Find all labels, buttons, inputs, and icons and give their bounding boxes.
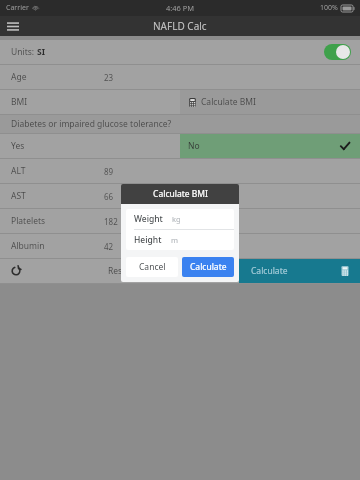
staticText: Yes xyxy=(11,140,25,152)
staticText: Albumin xyxy=(11,240,45,252)
staticText: 4:46 PM xyxy=(166,3,195,13)
button[interactable]: Calculate xyxy=(182,257,234,277)
button[interactable]: Age xyxy=(0,65,360,89)
staticText: BMI xyxy=(11,96,28,108)
button[interactable]: BMI xyxy=(0,90,180,114)
staticText: 182 xyxy=(104,216,118,227)
button[interactable]: No xyxy=(180,134,360,158)
staticText: AST xyxy=(11,190,26,202)
staticText: 42 xyxy=(104,241,114,252)
button[interactable]: Yes xyxy=(0,134,180,158)
staticText: Calculate xyxy=(190,261,227,273)
staticText: 66 xyxy=(104,191,114,202)
button[interactable]: Height xyxy=(126,230,234,250)
staticText: No xyxy=(188,140,200,152)
staticText: kg xyxy=(172,214,181,224)
button[interactable]: Cancel xyxy=(126,257,178,277)
staticText: Calculate BMI xyxy=(201,96,256,108)
button[interactable]: Albumin xyxy=(0,234,360,258)
button[interactable]: ALT xyxy=(0,159,360,183)
staticText: NAFLD Calc xyxy=(153,19,207,33)
staticText: 89 xyxy=(104,166,114,177)
staticText: m xyxy=(171,235,179,245)
staticText: Calculate xyxy=(251,265,288,277)
button[interactable]: Weight xyxy=(126,209,234,229)
staticText: 100% xyxy=(320,3,338,13)
button[interactable]: Reset xyxy=(0,259,239,283)
button[interactable]: Platelets xyxy=(0,209,360,233)
staticText: Calculate BMI xyxy=(153,188,208,200)
staticText: Platelets xyxy=(11,215,46,227)
button[interactable]: Units toggle xyxy=(324,44,351,60)
button[interactable]: AST xyxy=(0,184,360,208)
staticText: Height xyxy=(134,234,162,246)
staticText: 23 xyxy=(104,72,114,83)
staticText: Carrier xyxy=(6,3,29,13)
staticText: ALT xyxy=(11,165,26,177)
staticText: Age xyxy=(11,71,27,83)
button[interactable]: Calculate xyxy=(239,259,360,283)
staticText: Cancel xyxy=(139,261,166,273)
staticText: Units: xyxy=(11,46,37,58)
button[interactable]: Calculate BMI xyxy=(180,90,360,114)
staticText: Reset xyxy=(108,265,131,277)
staticText: Diabetes or impaired glucose tolerance? xyxy=(11,118,172,130)
staticText: Weight xyxy=(134,213,163,225)
staticText: SI xyxy=(37,46,45,58)
button[interactable]: Menu xyxy=(0,16,26,36)
